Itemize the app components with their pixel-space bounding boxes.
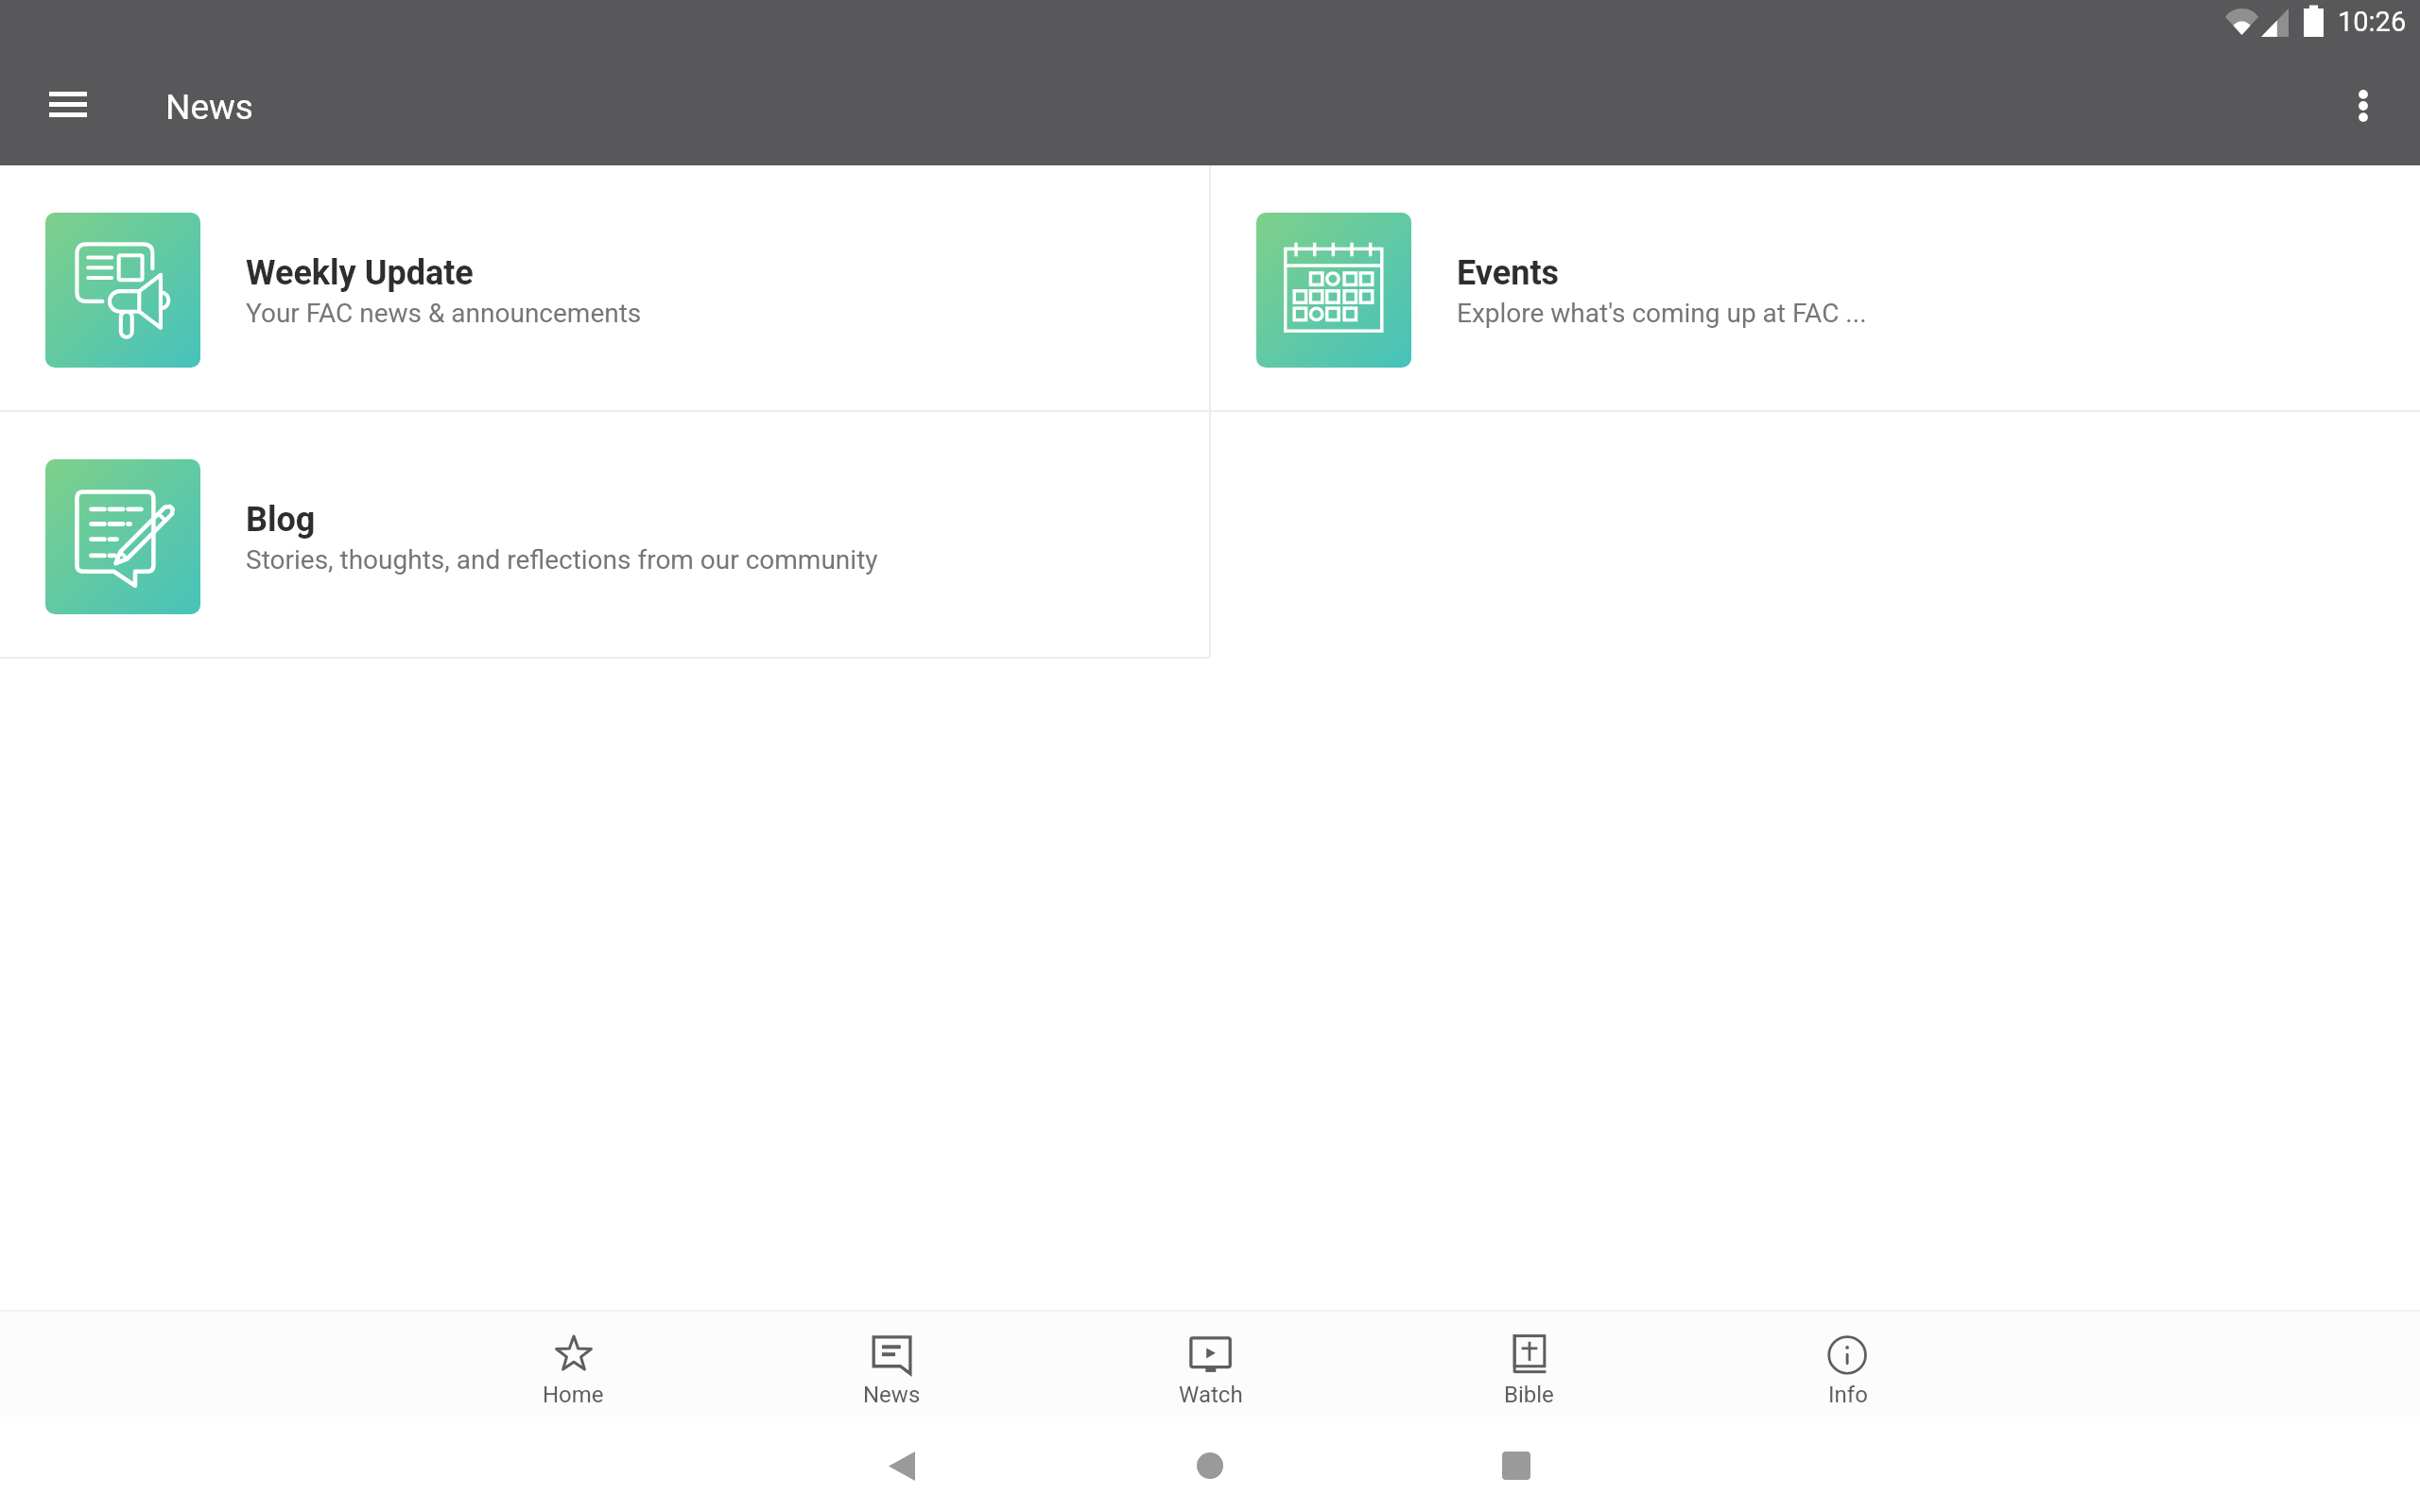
staticText: Weekly Update [246, 253, 474, 293]
staticText: Your FAC news & announcements [246, 298, 642, 329]
button[interactable]: Home [1172, 1428, 1248, 1503]
button[interactable]: Events [1211, 165, 2420, 410]
button[interactable]: Blog [0, 412, 1209, 657]
staticText: News [165, 87, 253, 128]
staticText: Explore what's coming up at FAC ... [1457, 298, 1867, 329]
staticText: Events [1457, 253, 1560, 293]
staticText: Blog [246, 500, 316, 540]
button[interactable]: More options [2322, 66, 2405, 149]
button[interactable]: Back [864, 1428, 940, 1503]
button[interactable]: Weekly Update [0, 165, 1209, 410]
button[interactable]: Watch [1051, 1312, 1370, 1417]
staticText: Home [543, 1382, 604, 1408]
button[interactable]: Recent apps [1478, 1428, 1554, 1503]
button[interactable]: Info [1688, 1312, 2007, 1417]
button[interactable]: Open navigation menu [26, 66, 110, 149]
staticText: Bible [1504, 1382, 1554, 1408]
button[interactable]: News [733, 1312, 1051, 1417]
staticText: News [863, 1382, 921, 1408]
staticText: Watch [1179, 1382, 1243, 1408]
staticText: Info [1828, 1382, 1868, 1408]
staticText: 10:26 [2338, 6, 2407, 38]
button[interactable]: Bible [1370, 1312, 1688, 1417]
button[interactable]: Home [414, 1312, 733, 1417]
staticText: Stories, thoughts, and reflections from … [246, 544, 878, 576]
